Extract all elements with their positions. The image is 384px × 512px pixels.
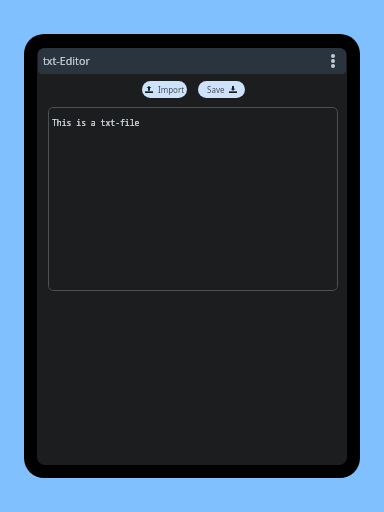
staticText: Import: [158, 84, 185, 95]
button[interactable]: Import: [142, 81, 187, 98]
button[interactable]: txt-Editor: [38, 48, 346, 74]
staticText: txt-Editor: [43, 54, 90, 69]
button[interactable]: Save: [198, 81, 245, 98]
button[interactable]: This is a txt-file: [48, 107, 338, 291]
staticText: This is a txt-file: [52, 117, 140, 128]
button[interactable]: More options: [326, 54, 340, 68]
staticText: Save: [207, 84, 225, 95]
